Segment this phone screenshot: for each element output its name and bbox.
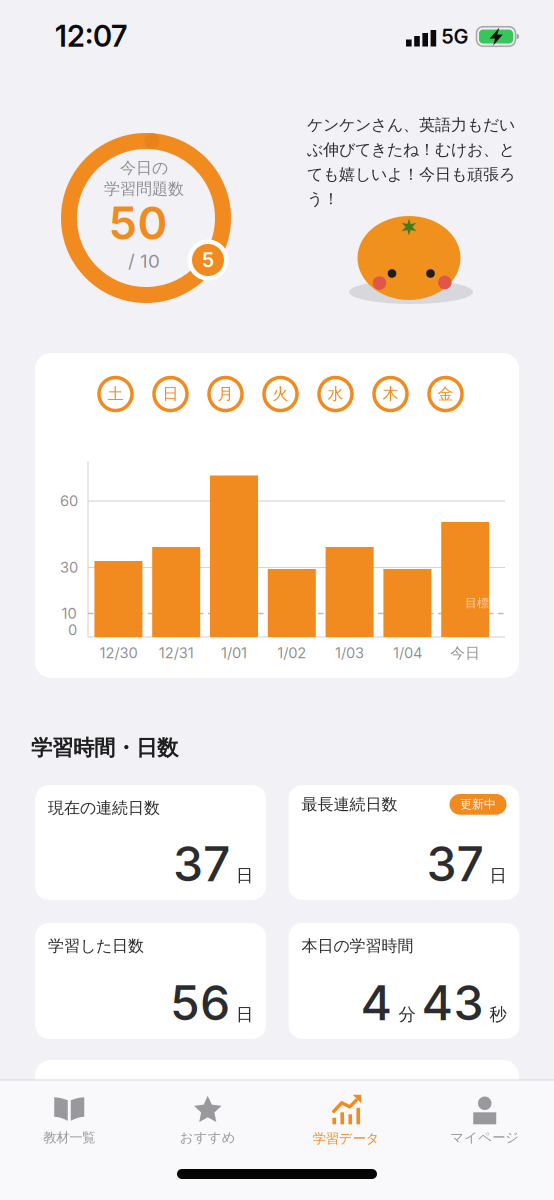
staticText: 更新中 bbox=[460, 797, 496, 812]
staticText: 1/01 bbox=[221, 644, 247, 662]
staticText: 1/02 bbox=[277, 644, 306, 662]
staticText: 日 bbox=[236, 1004, 253, 1025]
staticText: 分 bbox=[398, 1004, 415, 1025]
staticText: / 10 bbox=[128, 250, 160, 272]
staticText: 土 bbox=[107, 384, 123, 404]
staticText: 火 bbox=[272, 384, 288, 404]
staticText: 日 bbox=[236, 865, 253, 886]
staticText: 今日の bbox=[120, 158, 168, 178]
button[interactable]: おすすめ bbox=[139, 1089, 277, 1151]
staticText: 4 bbox=[360, 974, 392, 1031]
staticText: 37 bbox=[173, 835, 230, 892]
staticText: 5G bbox=[441, 25, 468, 48]
staticText: 50 bbox=[108, 196, 167, 250]
staticText: 教材一覧 bbox=[43, 1129, 95, 1146]
staticText: マイページ bbox=[450, 1129, 519, 1146]
staticText: 学習データ bbox=[313, 1130, 380, 1147]
staticText: ケンケンさん、英語力もだい ぶ伸びてきたね！むけお、と ても嬉しいよ！今日も頑張… bbox=[307, 115, 515, 209]
staticText: 1/03 bbox=[335, 644, 364, 662]
staticText: 5 bbox=[202, 248, 214, 272]
staticText: 金 bbox=[437, 384, 453, 404]
staticText: 今日 bbox=[450, 644, 480, 662]
staticText: 学習した日数 bbox=[48, 936, 144, 956]
staticText: 30 bbox=[60, 559, 78, 576]
staticText: 12/30 bbox=[99, 644, 137, 662]
staticText: 秒 bbox=[489, 1004, 506, 1025]
staticText: 最長連続日数 bbox=[301, 794, 397, 814]
staticText: 月 bbox=[217, 384, 233, 404]
staticText: 56 bbox=[170, 974, 230, 1031]
staticText: 12:07 bbox=[55, 19, 127, 53]
staticText: 日 bbox=[489, 865, 506, 886]
button[interactable]: マイページ bbox=[416, 1089, 554, 1151]
staticText: 1/04 bbox=[393, 644, 422, 662]
button[interactable]: 教材一覧 bbox=[0, 1089, 138, 1151]
button[interactable]: 学習データ bbox=[277, 1089, 415, 1151]
staticText: 目標 bbox=[465, 596, 489, 610]
staticText: おすすめ bbox=[180, 1129, 236, 1146]
staticText: 60 bbox=[60, 492, 78, 510]
staticText: 10 bbox=[61, 605, 76, 622]
staticText: 43 bbox=[421, 974, 483, 1031]
staticText: 学習時間・日数 bbox=[31, 735, 178, 761]
staticText: 12/31 bbox=[159, 644, 194, 662]
staticText: 日 bbox=[162, 384, 178, 404]
staticText: 0 bbox=[68, 621, 77, 639]
staticText: 木 bbox=[382, 384, 398, 404]
staticText: 37 bbox=[426, 835, 483, 892]
staticText: 学習問題数 bbox=[104, 179, 184, 199]
staticText: 現在の連続日数 bbox=[48, 798, 160, 818]
staticText: 本日の学習時間 bbox=[301, 936, 413, 956]
staticText: 水 bbox=[327, 384, 343, 404]
